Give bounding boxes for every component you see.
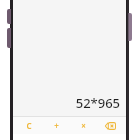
button[interactable]: Multiply: [72, 117, 94, 134]
button[interactable]: Backspace: [99, 117, 121, 134]
staticText: +: [54, 120, 59, 131]
staticText: 52*965: [13, 94, 120, 112]
button[interactable]: Power: [128, 13, 132, 41]
staticText: ×: [81, 120, 86, 131]
button[interactable]: 52*965: [13, 94, 120, 112]
button[interactable]: Clear: [18, 117, 40, 134]
button[interactable]: Plus: [45, 117, 67, 134]
button[interactable]: Volume up: [7, 9, 11, 24]
staticText: C: [26, 120, 32, 131]
button[interactable]: Volume down: [7, 28, 11, 48]
